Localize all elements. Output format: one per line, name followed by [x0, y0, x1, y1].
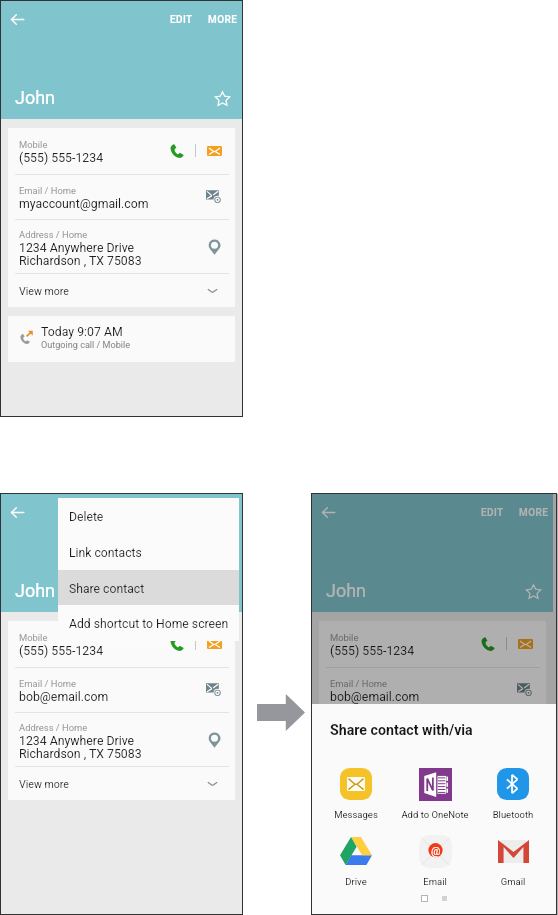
staticText: Email / Home	[19, 678, 77, 689]
staticText: Messages	[316, 809, 396, 820]
button[interactable]: Message	[200, 137, 228, 165]
staticText: Address / Home	[19, 722, 88, 733]
button[interactable]: Call	[163, 630, 191, 658]
staticText: Email	[395, 876, 475, 887]
button[interactable]: Address / Home	[8, 219, 235, 274]
staticText: (555) 555-1234	[330, 644, 415, 658]
button[interactable]: Favorite	[521, 579, 545, 603]
staticText: @	[431, 845, 441, 857]
staticText: (555) 555-1234	[19, 151, 104, 165]
button[interactable]: Messages	[316, 767, 396, 825]
staticText: 1234 Anywhere Drive	[19, 241, 135, 255]
staticText: Drive	[316, 876, 396, 887]
button[interactable]: Back	[316, 500, 340, 524]
button[interactable]: @	[395, 834, 475, 892]
button[interactable]: Mobile	[319, 621, 546, 667]
staticText: (555) 555-1234	[19, 644, 104, 658]
button[interactable]: EDIT	[476, 502, 509, 524]
staticText: Address / Home	[19, 229, 88, 240]
staticText: 1234 Anywhere Drive	[19, 734, 135, 748]
button[interactable]: Link contacts	[58, 534, 239, 570]
button[interactable]: EDIT	[165, 9, 198, 31]
button[interactable]: Address / Home	[319, 712, 546, 767]
button[interactable]: Send email	[200, 675, 228, 703]
button[interactable]: Send email	[511, 675, 539, 703]
staticText: Mobile	[330, 632, 359, 643]
staticText: Outgoing call / Mobile	[41, 340, 131, 351]
button[interactable]: Message	[200, 630, 228, 658]
staticText: John	[15, 580, 56, 601]
staticText: bob@email.com	[330, 690, 420, 704]
button[interactable]: Email / Home	[319, 667, 546, 712]
button[interactable]: MORE	[203, 502, 243, 524]
staticText: 1234 Anywhere Drive	[330, 734, 446, 748]
staticText: EDIT	[481, 507, 504, 519]
button[interactable]: MORE	[203, 9, 243, 31]
button[interactable]: Back	[5, 500, 29, 524]
staticText: bob@email.com	[19, 690, 109, 704]
staticText: Gmail	[473, 876, 553, 887]
button[interactable]: Send email	[200, 182, 228, 210]
staticText: View more	[19, 285, 69, 297]
button[interactable]: Delete	[58, 498, 239, 534]
button[interactable]: Email / Home	[8, 667, 235, 712]
staticText: Add to OneNote	[395, 809, 475, 820]
button[interactable]: Back	[5, 7, 29, 31]
staticText: MORE	[208, 14, 238, 26]
button[interactable]: Bluetooth	[473, 767, 553, 825]
button[interactable]: Gmail	[473, 834, 553, 892]
button[interactable]: Add to OneNote	[395, 767, 475, 825]
staticText: Email / Home	[330, 678, 388, 689]
staticText: Richardson , TX 75083	[19, 254, 142, 268]
staticText: Share contact	[69, 582, 145, 596]
staticText: Delete	[69, 510, 104, 524]
staticText: View more	[330, 778, 380, 790]
button[interactable]: Message	[511, 630, 539, 658]
staticText: Email / Home	[19, 185, 77, 196]
staticText: myaccount@gmail.com	[19, 197, 149, 211]
button[interactable]: Favorite	[210, 86, 234, 110]
button[interactable]: Call	[163, 137, 191, 165]
button[interactable]: Open map	[200, 234, 228, 262]
button[interactable]: MORE	[514, 502, 554, 524]
staticText: Mobile	[19, 139, 48, 150]
button[interactable]: Mobile	[8, 621, 235, 667]
button[interactable]: View more	[8, 273, 235, 307]
button[interactable]: Call	[474, 630, 502, 658]
button[interactable]: Drive	[316, 834, 396, 892]
button[interactable]: Address / Home	[8, 712, 235, 767]
button[interactable]: View more	[8, 766, 235, 800]
staticText: View more	[19, 778, 69, 790]
staticText: Link contacts	[69, 546, 142, 560]
staticText: Today 9:07 AM	[41, 325, 123, 339]
staticText: John	[326, 580, 367, 601]
button[interactable]: Mobile	[8, 128, 235, 174]
button[interactable]: Email / Home	[8, 174, 235, 219]
button[interactable]: Open map	[200, 727, 228, 755]
button[interactable]: Today 9:07 AM	[8, 316, 235, 362]
staticText: Mobile	[19, 632, 48, 643]
staticText: Address / Home	[330, 722, 399, 733]
staticText: Bluetooth	[473, 809, 553, 820]
staticText: Richardson , TX 75083	[19, 747, 142, 761]
button[interactable]: Add shortcut to Home screen	[58, 605, 239, 641]
staticText: MORE	[519, 507, 549, 519]
staticText: EDIT	[170, 14, 193, 26]
staticText: Add shortcut to Home screen	[69, 617, 229, 631]
button[interactable]: Share contact	[58, 570, 239, 606]
button[interactable]: View more	[319, 766, 546, 800]
staticText: John	[15, 87, 56, 108]
staticText: Share contact with/via	[330, 722, 473, 739]
